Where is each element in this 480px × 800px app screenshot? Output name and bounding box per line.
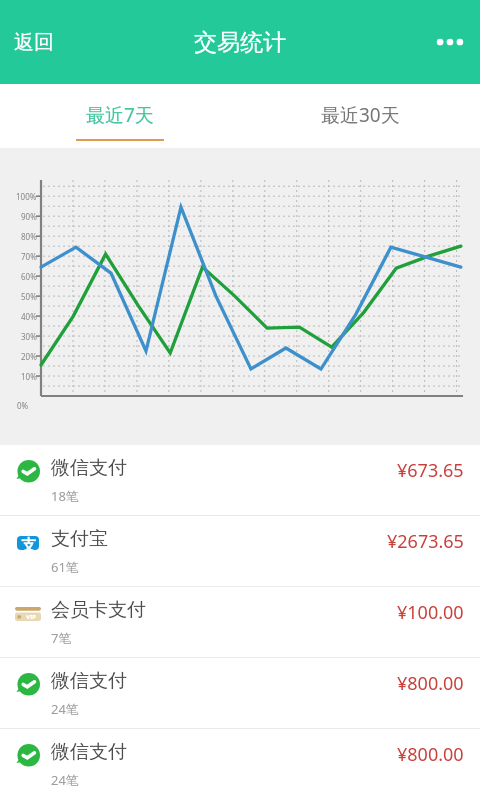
staticText: 返回 (14, 30, 54, 55)
button[interactable]: 微信支付 (0, 658, 480, 728)
staticText: 支付宝 (51, 527, 108, 551)
staticText: 微信支付 (51, 740, 127, 764)
staticText: 24笔 (51, 771, 79, 789)
button[interactable]: More options (424, 20, 476, 64)
staticText: 20% (21, 351, 37, 362)
button[interactable]: VIP (0, 587, 480, 657)
staticText: 10% (21, 371, 37, 382)
staticText: 80% (21, 231, 37, 242)
button[interactable]: 返回 (2, 20, 66, 65)
staticText: 90% (21, 211, 37, 222)
staticText: 交易统计 (194, 28, 286, 57)
staticText: VIP (26, 613, 36, 621)
staticText: ¥673.65 (397, 458, 464, 483)
staticText: ¥800.00 (397, 742, 464, 767)
staticText: 40% (21, 311, 37, 322)
staticText: 微信支付 (51, 669, 127, 693)
staticText: 50% (21, 291, 37, 302)
staticText: 最近30天 (321, 102, 400, 128)
staticText: 微信支付 (51, 456, 127, 480)
staticText: 最近7天 (86, 102, 154, 128)
staticText: 支 (21, 536, 36, 550)
staticText: ¥100.00 (397, 600, 464, 625)
staticText: 30% (21, 331, 37, 342)
button[interactable]: 微信支付 (0, 729, 480, 799)
staticText: ¥2673.65 (387, 529, 464, 554)
staticText: 70% (21, 251, 37, 262)
staticText: 61笔 (51, 558, 79, 576)
staticText: 会员卡支付 (51, 598, 146, 622)
button[interactable]: 最近7天 (0, 84, 240, 148)
button[interactable]: 最近30天 (240, 84, 480, 148)
staticText: 18笔 (51, 487, 79, 505)
button[interactable]: 微信支付 (0, 445, 480, 515)
staticText: 0% (17, 400, 29, 411)
staticText: 60% (21, 271, 37, 282)
staticText: ¥800.00 (397, 671, 464, 696)
staticText: 24笔 (51, 700, 79, 718)
button[interactable]: 支 (0, 516, 480, 586)
staticText: 7笔 (51, 629, 72, 647)
staticText: 100% (16, 191, 37, 202)
